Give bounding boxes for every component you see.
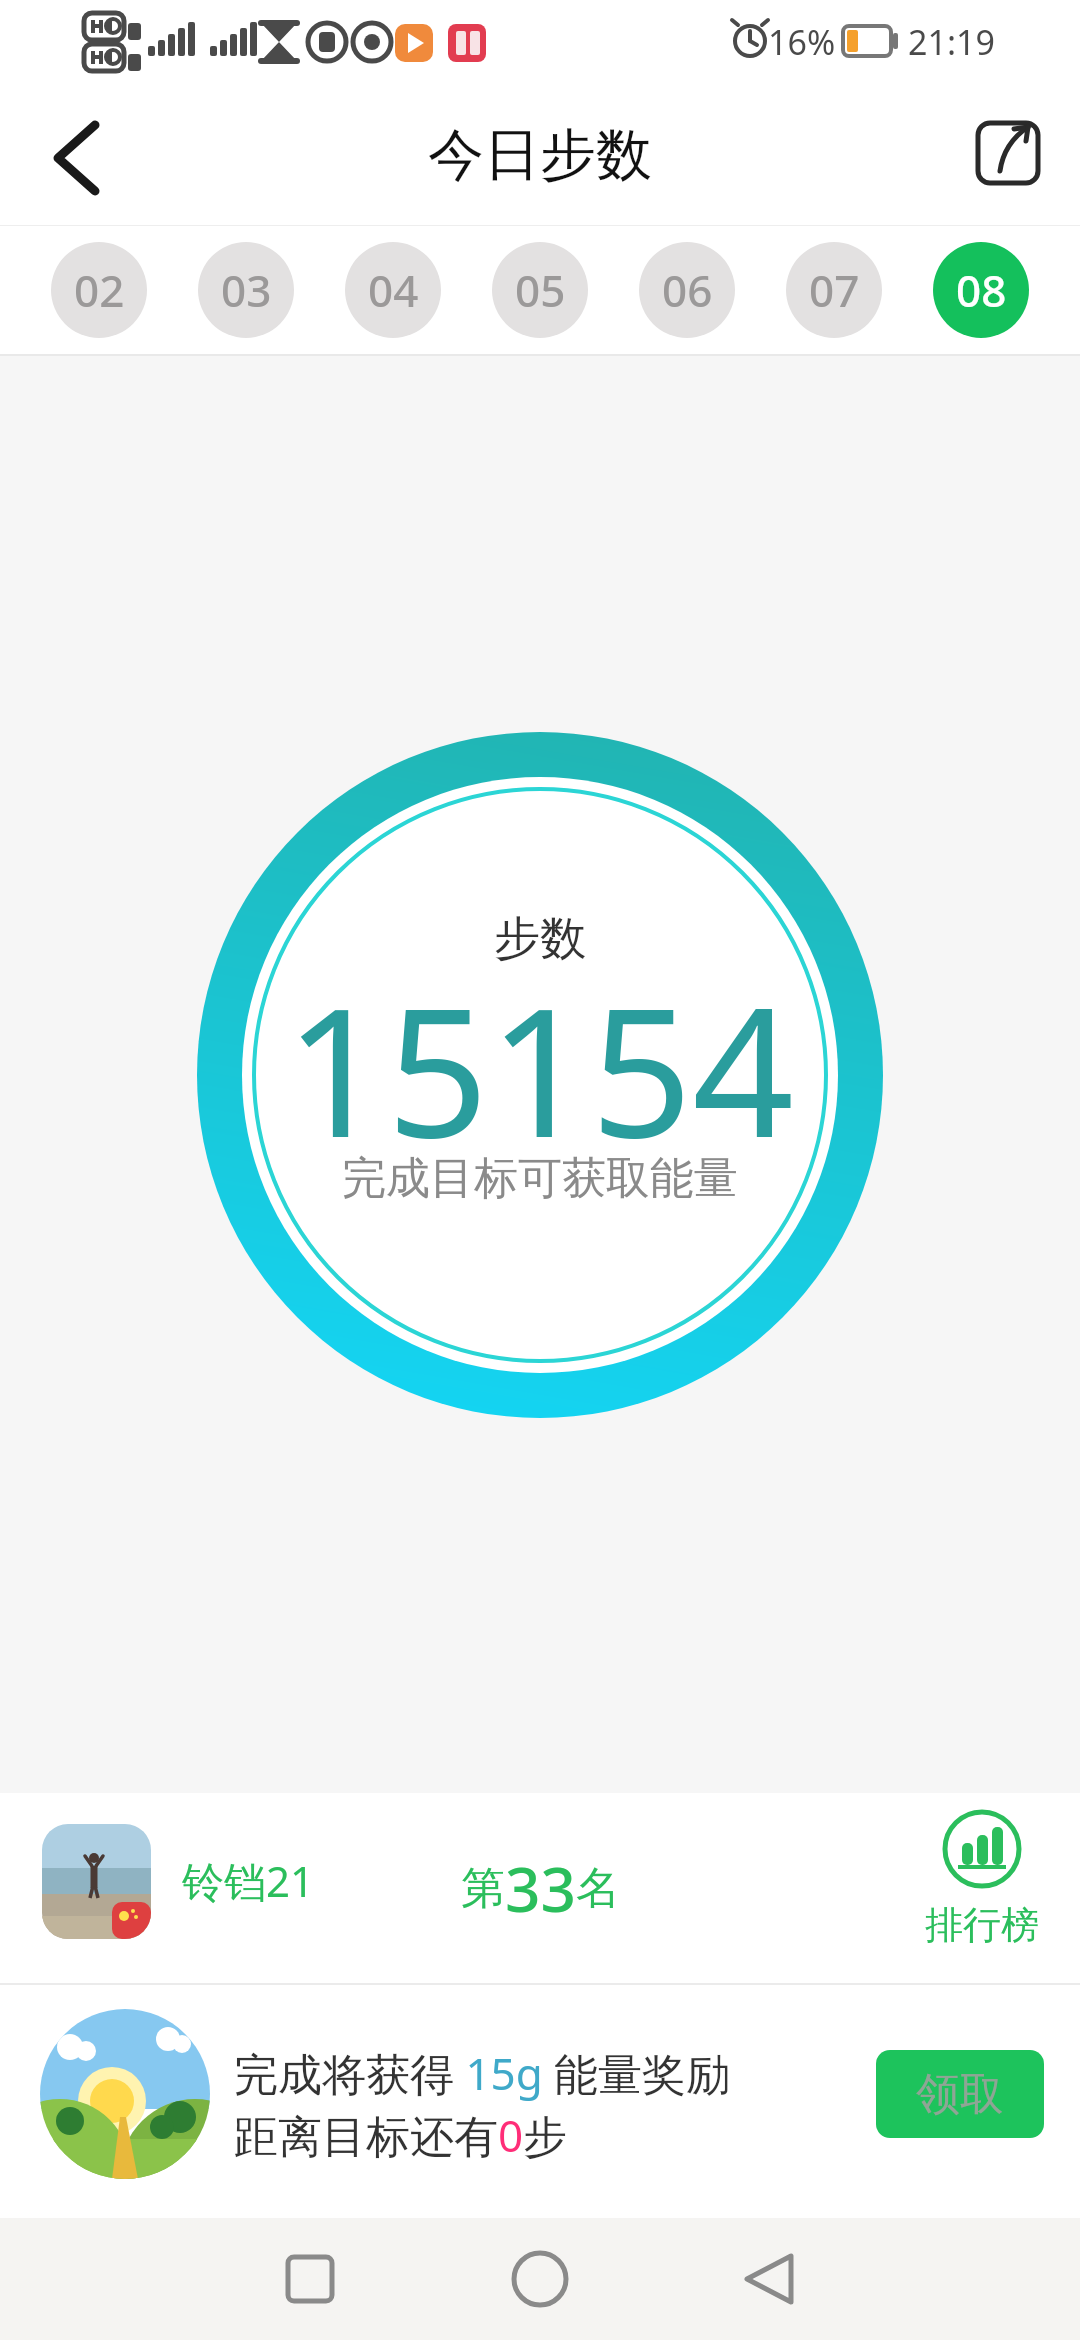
staticText: 第	[461, 1861, 505, 1916]
button[interactable]: 08	[933, 242, 1029, 338]
button[interactable]: 03	[198, 242, 294, 338]
staticText: 铃铛21	[182, 1852, 315, 1909]
staticText: 03	[221, 260, 272, 320]
staticText: 领取	[916, 2067, 1004, 2122]
staticText: 距离目标还有0步	[234, 2105, 568, 2165]
button[interactable]	[723, 2234, 813, 2324]
staticText: 排行榜	[925, 1901, 1039, 1949]
button[interactable]	[495, 2234, 585, 2324]
button[interactable]: 排行榜	[912, 1805, 1052, 1975]
staticText: 21:19	[908, 19, 995, 65]
button[interactable]	[962, 107, 1052, 197]
button[interactable]: 07	[786, 242, 882, 338]
staticText: 完成将获得 15g 能量奖励	[234, 2043, 731, 2103]
staticText: 04	[368, 260, 419, 320]
button[interactable]: 领取	[876, 2050, 1044, 2138]
staticText: 名	[576, 1861, 620, 1916]
staticText: 07	[809, 260, 860, 320]
staticText: 步数	[494, 910, 586, 968]
button[interactable]: 铃铛21	[0, 1793, 1080, 1983]
button[interactable]: 05	[492, 242, 588, 338]
staticText: 08	[956, 260, 1007, 320]
staticText: 16%	[768, 19, 836, 65]
staticText: 33	[505, 1846, 576, 1930]
button[interactable]: 02	[51, 242, 147, 338]
button[interactable]	[30, 100, 120, 210]
button[interactable]: 06	[639, 242, 735, 338]
staticText: 完成目标可获取能量	[342, 1151, 738, 1206]
staticText: 今日步数	[428, 120, 652, 191]
button[interactable]: 04	[345, 242, 441, 338]
staticText: 05	[515, 260, 566, 320]
staticText: 15154	[285, 947, 795, 1189]
button[interactable]	[265, 2234, 355, 2324]
staticText: 06	[662, 260, 713, 320]
staticText: 02	[74, 260, 125, 320]
